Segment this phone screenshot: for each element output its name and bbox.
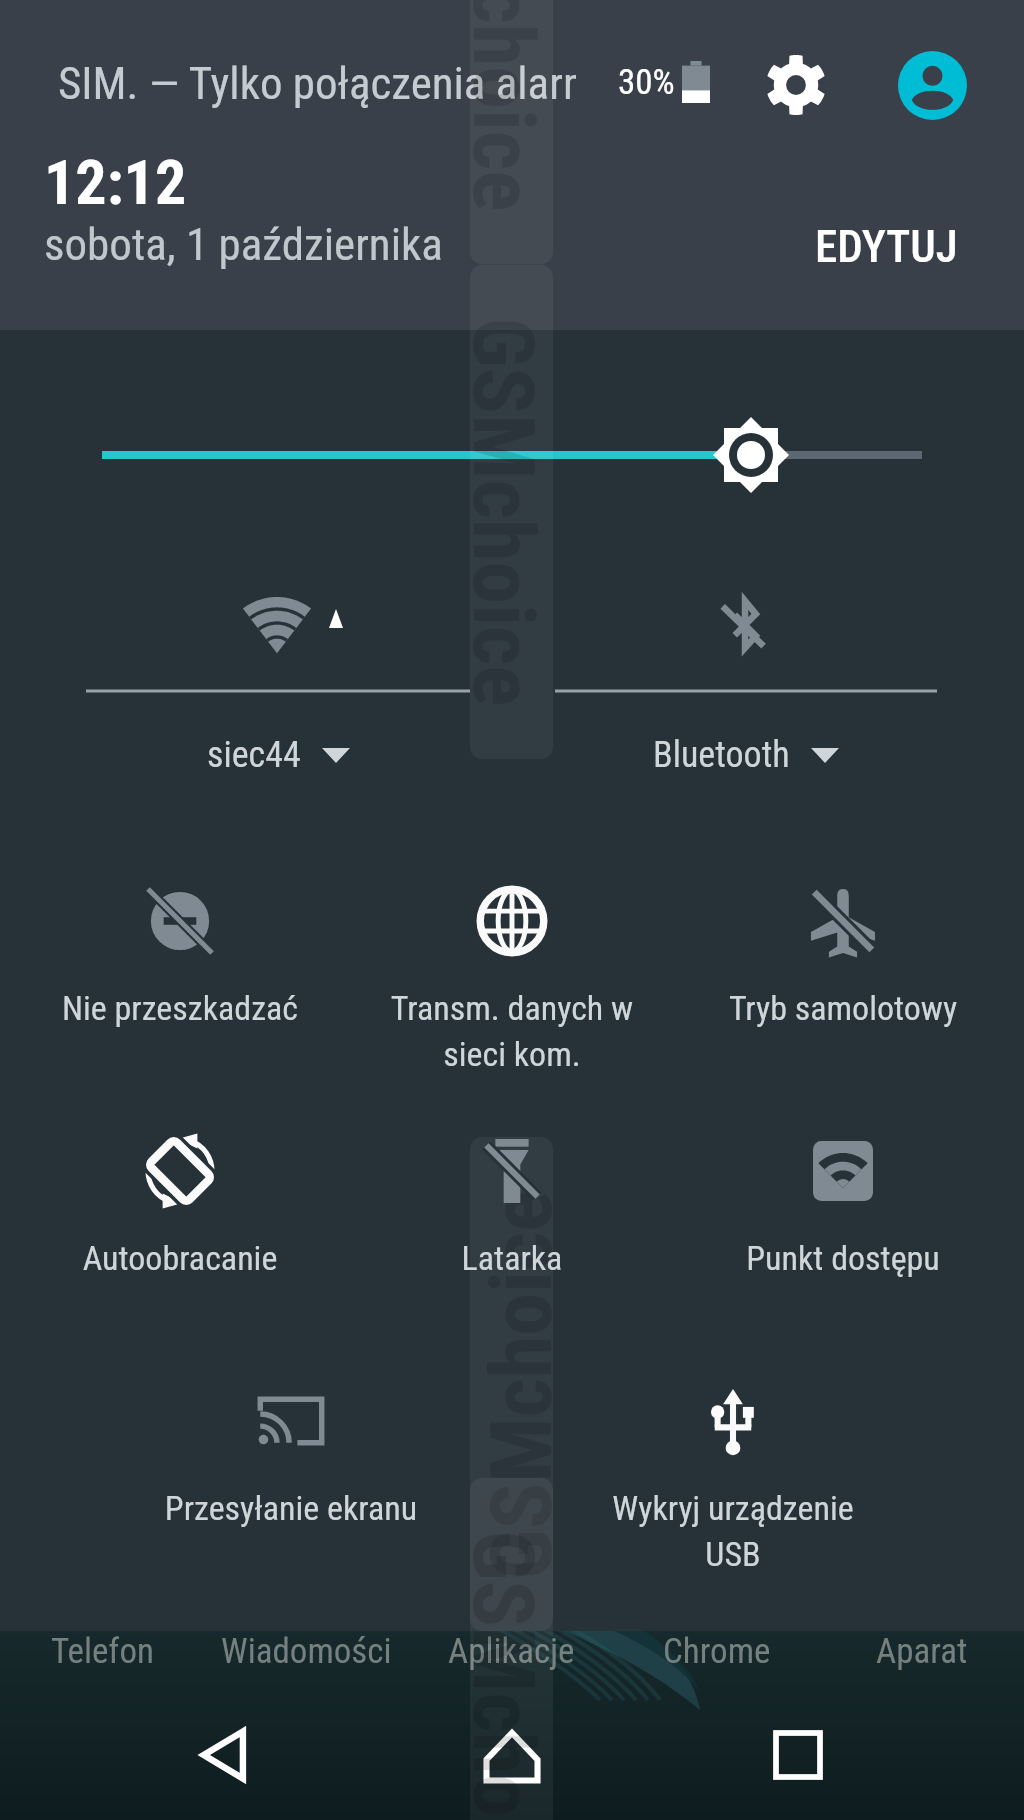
staticText: GSMchoice bbox=[470, 1530, 553, 1820]
button[interactable]: Brightness bbox=[60, 390, 964, 520]
staticText: GSMchoice bbox=[470, 317, 553, 707]
staticText: Aplikacje bbox=[448, 1631, 575, 1671]
button[interactable]: Punkt dostępu bbox=[673, 1111, 1013, 1336]
button[interactable]: Przesyłanie ekranu bbox=[121, 1361, 461, 1586]
button[interactable]: Wiadomości bbox=[204, 1631, 409, 1671]
button[interactable]: Home bbox=[452, 1695, 572, 1815]
staticText: Wykryj urządzenie USB bbox=[563, 1488, 903, 1575]
button[interactable]: User profile bbox=[888, 41, 976, 129]
staticText: GSMchoice bbox=[470, 1189, 553, 1579]
staticText: Chrome bbox=[663, 1631, 771, 1671]
staticText: 12:12 bbox=[44, 146, 187, 219]
staticText: Latarka bbox=[342, 1238, 682, 1278]
staticText: GSMchoice bbox=[470, 0, 553, 212]
staticText: Przesyłanie ekranu bbox=[121, 1488, 461, 1528]
staticText: Bluetooth bbox=[653, 734, 790, 776]
staticText: Telefon bbox=[51, 1631, 154, 1671]
staticText: sobota, 1 października bbox=[44, 218, 443, 271]
button[interactable]: Bluetooth bbox=[512, 560, 1024, 800]
staticText: Autoobracanie bbox=[10, 1238, 350, 1278]
button[interactable]: Settings bbox=[752, 41, 840, 129]
button[interactable]: EDYTUJ bbox=[795, 206, 978, 287]
button[interactable]: Tryb samolotowy bbox=[673, 861, 1013, 1086]
button[interactable]: Back bbox=[165, 1695, 285, 1815]
button[interactable]: Telefon bbox=[0, 1631, 204, 1671]
button[interactable]: Wykryj urządzenie USB bbox=[563, 1361, 903, 1586]
staticText: Nie przeszkadzać bbox=[10, 988, 350, 1028]
staticText: siec44 bbox=[207, 734, 301, 776]
button[interactable]: Aplikacje bbox=[409, 1631, 614, 1671]
staticText: Punkt dostępu bbox=[673, 1238, 1013, 1278]
button[interactable]: Autoobracanie bbox=[10, 1111, 350, 1336]
staticText: 30% bbox=[618, 62, 675, 103]
button[interactable]: Nie przeszkadzać bbox=[10, 861, 350, 1086]
staticText: Aparat bbox=[876, 1631, 968, 1671]
staticText: Tryb samolotowy bbox=[673, 988, 1013, 1028]
button[interactable]: Chrome bbox=[614, 1631, 819, 1671]
button[interactable]: siec44 bbox=[0, 560, 512, 800]
button[interactable]: Aparat bbox=[819, 1631, 1024, 1671]
button[interactable]: Latarka bbox=[342, 1111, 682, 1336]
button[interactable]: Recents bbox=[738, 1695, 858, 1815]
staticText: SIM. — Tylko połączenia alarmowe bbox=[58, 57, 576, 110]
staticText: Wiadomości bbox=[221, 1631, 392, 1671]
staticText: EDYTUJ bbox=[815, 220, 958, 273]
button[interactable]: Transm. danych w sieci kom. bbox=[342, 861, 682, 1086]
staticText: Transm. danych w sieci kom. bbox=[342, 988, 682, 1075]
